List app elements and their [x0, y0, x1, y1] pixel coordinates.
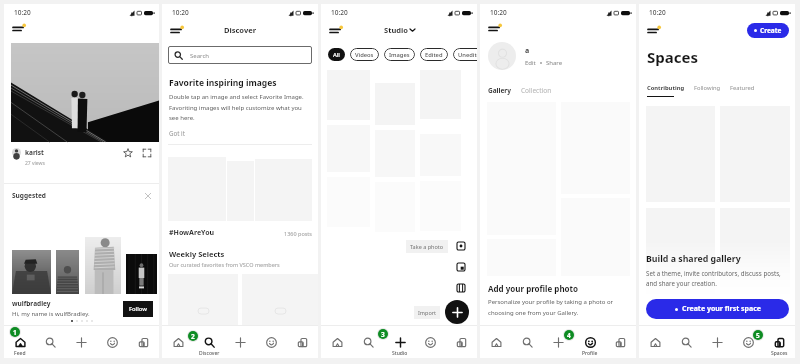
button[interactable]: Take a photo	[453, 238, 469, 254]
staticText: Follow	[129, 305, 147, 313]
button[interactable]	[646, 208, 715, 318]
button[interactable]: Profile	[415, 326, 446, 358]
button[interactable]: Profile	[256, 326, 287, 358]
button[interactable]: Import	[445, 300, 469, 324]
staticText: Profile	[582, 350, 598, 357]
button[interactable]	[12, 250, 51, 294]
staticText: Create your first space	[682, 304, 761, 314]
button[interactable]: Studio	[66, 326, 97, 358]
button[interactable]: Feed	[4, 326, 35, 358]
button[interactable]: Search	[168, 46, 312, 64]
button[interactable]	[126, 254, 157, 294]
button[interactable]: Discover	[671, 326, 702, 358]
staticText: Suggested	[12, 191, 46, 200]
button[interactable]: Feed	[639, 326, 671, 358]
button[interactable]: Profile	[97, 326, 128, 358]
button[interactable]	[487, 239, 556, 309]
button[interactable]: Feed	[321, 326, 353, 358]
button[interactable]	[11, 43, 159, 142]
button[interactable]: Menu	[648, 25, 662, 36]
button[interactable]: Feed	[162, 326, 194, 358]
button[interactable]: Menu	[13, 23, 27, 34]
button[interactable]	[720, 208, 790, 318]
button[interactable]: Edited	[420, 48, 448, 61]
staticText: Create	[760, 26, 782, 35]
staticText: 10:20	[331, 8, 348, 17]
staticText: Hi, my name is wulfBradley.	[12, 310, 90, 318]
button[interactable]: Spaces	[764, 326, 795, 358]
button[interactable]: Create	[747, 23, 789, 38]
button[interactable]: Spaces	[128, 326, 159, 358]
button[interactable]: Follow	[123, 301, 153, 317]
button[interactable]: Discover	[512, 326, 543, 358]
staticText: Spaces	[647, 47, 698, 67]
button[interactable]: Favorite	[123, 148, 133, 158]
button[interactable]: Share	[546, 59, 563, 67]
button[interactable]: Video	[453, 280, 469, 296]
button[interactable]: All	[328, 48, 345, 61]
button[interactable]: Menu	[171, 25, 185, 36]
staticText: a	[525, 46, 530, 56]
button[interactable]: Profile	[574, 326, 605, 358]
staticText: Search	[190, 52, 209, 60]
button[interactable]: Spaces	[446, 326, 477, 358]
button[interactable]: Images	[384, 48, 415, 61]
button[interactable]: Create your first space	[646, 299, 789, 319]
button[interactable]: Unedited	[453, 48, 477, 61]
button[interactable]: Feed	[480, 326, 512, 358]
button[interactable]: Discover	[353, 326, 384, 358]
button[interactable]: Discover	[35, 326, 66, 358]
button[interactable]: Dismiss	[144, 192, 152, 200]
staticText: Add your profile photo	[488, 283, 579, 294]
button[interactable]: Featured	[730, 84, 755, 92]
button[interactable]: Got it	[169, 129, 185, 137]
staticText: Weekly Selects	[169, 249, 225, 259]
button[interactable]: Collection	[521, 86, 552, 95]
staticText: Spaces	[771, 350, 788, 357]
staticText: 10:20	[14, 8, 31, 17]
button[interactable]: Gallery	[488, 86, 511, 95]
button[interactable]: Following	[694, 84, 721, 92]
button[interactable]: Studio	[384, 326, 415, 358]
button[interactable]: Menu	[489, 23, 503, 34]
button[interactable]: Studio	[543, 326, 574, 358]
button[interactable]: Studio	[225, 326, 256, 358]
button[interactable]: Share	[142, 148, 152, 158]
staticText: wulfbradley	[12, 299, 51, 308]
button[interactable]: Spaces	[605, 326, 636, 358]
staticText: Discover	[199, 350, 220, 357]
button[interactable]: Contributing	[647, 84, 685, 97]
button[interactable]: Studio	[702, 326, 733, 358]
button[interactable]: Videos	[350, 48, 379, 61]
staticText: 2	[191, 332, 195, 341]
staticText: 5	[756, 331, 760, 340]
button[interactable]: Discover	[194, 326, 225, 358]
button[interactable]: Profile photo	[488, 42, 516, 70]
button[interactable]: Montage	[453, 259, 469, 275]
staticText: Studio	[392, 350, 408, 357]
staticText: 10:20	[490, 8, 507, 17]
button[interactable]: Edit	[525, 59, 536, 67]
button[interactable]: Spaces	[287, 326, 318, 358]
button[interactable]: Menu	[330, 25, 344, 36]
button[interactable]	[561, 198, 630, 308]
button[interactable]	[56, 250, 79, 294]
button[interactable]	[85, 237, 121, 294]
button[interactable]: Profile	[733, 326, 764, 358]
